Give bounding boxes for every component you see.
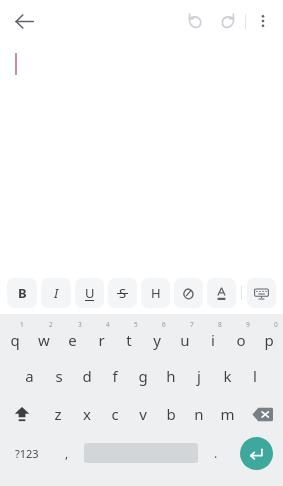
staticText: q (10, 330, 20, 350)
staticText: n (194, 404, 204, 424)
button[interactable]: 4 (87, 317, 115, 357)
button[interactable]: . (202, 433, 229, 473)
staticText: d (82, 366, 92, 386)
button[interactable]: S (108, 278, 137, 308)
button[interactable]: Hide keyboard (247, 278, 276, 308)
staticText: h (166, 366, 176, 386)
button[interactable]: b (157, 395, 185, 433)
staticText: y (153, 330, 161, 350)
button[interactable]: Text color (207, 278, 236, 308)
button[interactable]: 5 (115, 317, 143, 357)
button[interactable]: x (72, 395, 101, 433)
button[interactable]: More options (246, 4, 280, 38)
staticText: 9 (246, 320, 250, 329)
button[interactable]: c (101, 395, 129, 433)
staticText: i (211, 330, 215, 350)
button[interactable]: 7 (171, 317, 199, 357)
button[interactable]: Undo (177, 4, 211, 38)
staticText: s (55, 366, 63, 386)
staticText: B (18, 284, 27, 302)
button[interactable]: 6 (143, 317, 171, 357)
button[interactable]: 3 (58, 317, 87, 357)
staticText: 8 (218, 320, 222, 329)
button[interactable]: ?123 (0, 433, 53, 473)
staticText: a (25, 366, 34, 386)
button[interactable]: Enter (240, 437, 273, 470)
button[interactable]: l (241, 357, 269, 395)
staticText: u (180, 330, 190, 350)
button[interactable]: a (15, 357, 44, 395)
button[interactable]: v (129, 395, 157, 433)
button[interactable]: 2 (29, 317, 58, 357)
staticText: g (138, 366, 148, 386)
staticText: 5 (134, 320, 138, 329)
staticText: r (98, 330, 105, 350)
staticText: 0 (274, 320, 278, 329)
button[interactable]: , (53, 433, 80, 473)
button[interactable]: B (7, 278, 37, 308)
button[interactable]: U (75, 278, 104, 308)
button[interactable]: Shift (0, 395, 43, 433)
staticText: m (220, 404, 235, 424)
staticText: v (139, 404, 147, 424)
staticText: z (54, 404, 62, 424)
button[interactable]: Backspace (241, 395, 283, 433)
button[interactable]: m (213, 395, 241, 433)
staticText: t (126, 330, 132, 350)
staticText: o (236, 330, 246, 350)
button[interactable]: Redo (211, 4, 245, 38)
button[interactable]: I (41, 278, 71, 308)
staticText: e (68, 330, 77, 350)
staticText: f (112, 366, 118, 386)
button[interactable]: g (129, 357, 157, 395)
staticText: 3 (78, 320, 82, 329)
staticText: l (253, 366, 257, 386)
button[interactable]: f (101, 357, 129, 395)
button[interactable]: 0 (255, 317, 283, 357)
staticText: k (223, 366, 232, 386)
button[interactable]: h (157, 357, 185, 395)
staticText: c (111, 404, 119, 424)
button[interactable]: j (185, 357, 213, 395)
button[interactable]: 9 (227, 317, 255, 357)
staticText: S (119, 284, 127, 302)
button[interactable]: z (43, 395, 72, 433)
staticText: 4 (106, 320, 110, 329)
button[interactable]: H (141, 278, 170, 308)
button[interactable]: s (44, 357, 73, 395)
staticText: b (166, 404, 176, 424)
staticText: x (83, 404, 91, 424)
button[interactable]: 1 (0, 317, 29, 357)
staticText: j (197, 366, 201, 386)
button[interactable]: 8 (199, 317, 227, 357)
button[interactable]: k (213, 357, 241, 395)
staticText: p (264, 330, 274, 350)
staticText: I (54, 284, 59, 302)
staticText: . (214, 445, 218, 461)
staticText: 2 (49, 320, 53, 329)
button[interactable]: d (73, 357, 101, 395)
staticText: 1 (20, 320, 24, 329)
staticText: 7 (190, 320, 194, 329)
staticText: 6 (162, 320, 166, 329)
button[interactable]: Highlight (174, 278, 203, 308)
button[interactable]: Back (5, 2, 43, 40)
staticText: ?123 (15, 446, 39, 461)
staticText: U (85, 284, 95, 302)
button[interactable]: n (185, 395, 213, 433)
staticText: w (38, 330, 50, 350)
staticText: H (151, 284, 161, 302)
staticText: , (65, 445, 69, 461)
